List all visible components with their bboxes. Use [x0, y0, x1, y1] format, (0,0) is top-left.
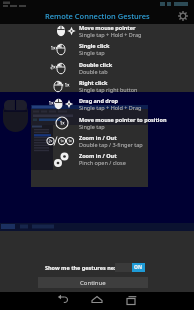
- staticText: Double tap / 3-finger tap: [79, 141, 143, 148]
- button[interactable]: Double click: [44, 59, 148, 77]
- staticText: Zoom in / Out: [79, 134, 117, 141]
- staticText: ON: [134, 264, 143, 271]
- button[interactable]: ON: [115, 263, 145, 272]
- button[interactable]: Show me the gestures next time: [38, 261, 148, 273]
- staticText: Remote Connection Gestures: [45, 11, 150, 21]
- staticText: Single tap: [79, 123, 105, 130]
- staticText: Right click: [79, 79, 108, 86]
- button[interactable]: Zoom in / Out: [44, 150, 148, 168]
- staticText: Move mouse pointer: [79, 24, 136, 31]
- staticText: Pinch open / close: [79, 159, 126, 166]
- staticText: Single click: [79, 42, 110, 49]
- staticText: Double tab: [79, 68, 108, 75]
- staticText: Drag and drop: [79, 97, 119, 104]
- staticText: Single tap + Hold + Drag: [79, 31, 142, 38]
- staticText: Zoom in / Out: [79, 152, 117, 159]
- button[interactable]: Move mouse pointer: [44, 22, 148, 40]
- button[interactable]: Recents: [114, 292, 148, 310]
- button[interactable]: Drag and drop: [44, 95, 148, 113]
- button[interactable]: Move mouse pointer to position: [44, 114, 148, 132]
- button[interactable]: Single click: [44, 40, 148, 58]
- staticText: Move mouse pointer to position: [79, 116, 167, 123]
- staticText: Single tap: [79, 49, 105, 56]
- staticText: Double click: [79, 61, 113, 68]
- staticText: Show me the gestures next time: [45, 264, 134, 271]
- button[interactable]: Home: [80, 292, 114, 310]
- button[interactable]: Continue: [38, 277, 148, 288]
- button[interactable]: Zoom in / Out: [44, 132, 148, 150]
- staticText: Continue: [80, 279, 106, 287]
- button[interactable]: Settings: [176, 9, 190, 23]
- staticText: Single tap right button: [79, 86, 138, 93]
- button[interactable]: Right click: [44, 77, 148, 95]
- button[interactable]: Back: [46, 292, 80, 310]
- staticText: Single tap + Hold + Drag: [79, 104, 142, 111]
